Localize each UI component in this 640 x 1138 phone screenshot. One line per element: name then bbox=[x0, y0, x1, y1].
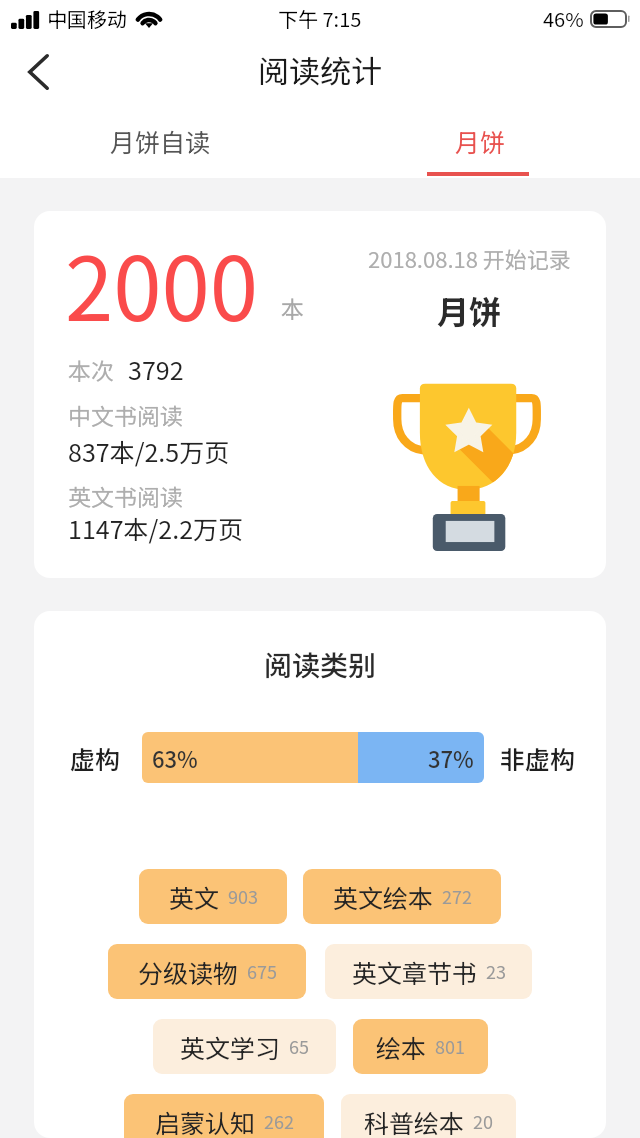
staticText: 分级读物 bbox=[138, 954, 239, 990]
staticText: 非虚构 bbox=[500, 740, 576, 776]
staticText: 20 bbox=[473, 1108, 493, 1134]
staticText: 801 bbox=[435, 1033, 465, 1059]
staticText: 英文绘本 bbox=[333, 879, 434, 915]
staticText: 中国移动 bbox=[47, 4, 127, 33]
button[interactable]: 英文绘本 bbox=[303, 869, 501, 924]
button[interactable]: 科普绘本 bbox=[341, 1094, 516, 1138]
button[interactable]: 英文章节书 bbox=[325, 944, 532, 999]
staticText: 英文 bbox=[169, 879, 220, 915]
staticText: 37% bbox=[428, 742, 474, 774]
staticText: 月饼 bbox=[455, 123, 506, 159]
staticText: 中文书阅读 bbox=[68, 398, 183, 431]
staticText: 英文学习 bbox=[180, 1029, 281, 1065]
button[interactable]: 分级读物 bbox=[108, 944, 306, 999]
button[interactable]: 月饼 bbox=[320, 104, 640, 178]
staticText: 本次 bbox=[68, 353, 114, 386]
button[interactable]: Back bbox=[0, 36, 64, 104]
staticText: 英文书阅读 bbox=[68, 479, 183, 512]
staticText: 绘本 bbox=[376, 1029, 427, 1065]
staticText: 675 bbox=[247, 958, 277, 984]
staticText: 23 bbox=[486, 958, 506, 984]
staticText: 本 bbox=[281, 291, 304, 324]
button[interactable]: 绘本 bbox=[353, 1019, 488, 1074]
staticText: 262 bbox=[264, 1108, 294, 1134]
staticText: 月饼 bbox=[437, 287, 502, 333]
staticText: 科普绘本 bbox=[364, 1104, 465, 1138]
staticText: 下午 7:15 bbox=[278, 4, 362, 33]
staticText: 63% bbox=[152, 742, 198, 774]
staticText: 903 bbox=[228, 883, 258, 909]
staticText: 月饼自读 bbox=[110, 123, 211, 159]
button[interactable]: 英文 bbox=[139, 869, 287, 924]
staticText: 1147本/2.2万页 bbox=[68, 510, 244, 546]
staticText: 65 bbox=[289, 1033, 309, 1059]
staticText: 2018.08.18 开始记录 bbox=[368, 242, 571, 274]
button[interactable]: 月饼自读 bbox=[0, 104, 320, 178]
staticText: 46% bbox=[543, 4, 584, 33]
button[interactable]: 英文学习 bbox=[153, 1019, 336, 1074]
staticText: 英文章节书 bbox=[352, 954, 478, 990]
staticText: 3792 bbox=[128, 351, 184, 387]
staticText: 272 bbox=[442, 883, 472, 909]
staticText: 虚构 bbox=[70, 740, 121, 776]
staticText: 阅读类别 bbox=[264, 644, 377, 685]
staticText: 启蒙认知 bbox=[155, 1104, 256, 1138]
staticText: 阅读统计 bbox=[258, 47, 382, 92]
staticText: 837本/2.5万页 bbox=[68, 433, 230, 469]
button[interactable]: 启蒙认知 bbox=[124, 1094, 324, 1138]
staticText: 2000 bbox=[65, 220, 259, 346]
